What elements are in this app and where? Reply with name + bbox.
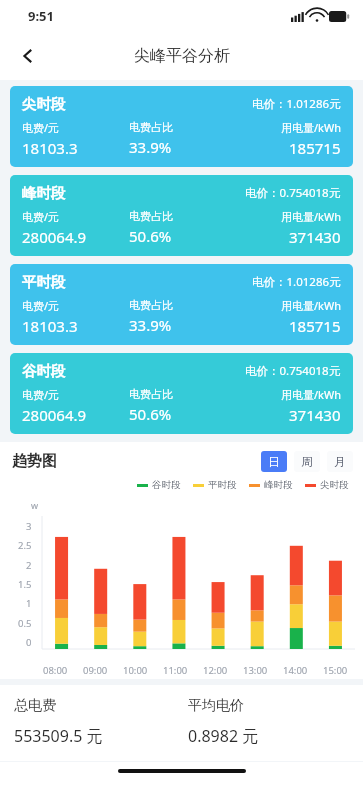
staticText: 2 xyxy=(26,559,32,572)
staticText: 185715 xyxy=(289,138,341,158)
staticText: 平时段 xyxy=(22,273,66,291)
staticText: 371430 xyxy=(289,227,341,247)
staticText: 33.9% xyxy=(129,137,172,157)
staticText: 月 xyxy=(334,455,346,469)
staticText: 371430 xyxy=(289,405,341,425)
staticText: 0.8982 元 xyxy=(188,725,259,747)
staticText: 日 xyxy=(268,455,280,469)
staticText: 50.6% xyxy=(129,404,172,424)
staticText: 553509.5 元 xyxy=(14,725,103,747)
staticText: 18103.3 xyxy=(22,138,78,158)
staticText: 总电费 xyxy=(14,697,56,715)
staticText: 13:00 xyxy=(243,664,268,677)
staticText: 电费/元 xyxy=(22,298,60,313)
staticText: 峰时段 xyxy=(22,184,66,202)
staticText: 用电量/kWh xyxy=(281,120,341,135)
button[interactable]: 尖时段 xyxy=(10,86,353,167)
button[interactable]: Back xyxy=(6,34,50,78)
staticText: 15:00 xyxy=(323,664,348,677)
staticText: 尖时段 xyxy=(320,479,349,491)
staticText: 平时段 xyxy=(208,479,237,491)
staticText: 趋势图 xyxy=(12,452,57,471)
staticText: 电费占比 xyxy=(129,298,173,312)
staticText: 电价：0.754018元 xyxy=(245,363,341,379)
staticText: 11:00 xyxy=(163,664,188,677)
staticText: 1 xyxy=(26,597,32,610)
staticText: 电费/元 xyxy=(22,120,60,135)
staticText: 10:00 xyxy=(123,664,148,677)
staticText: 用电量/kWh xyxy=(281,298,341,313)
staticText: 14:00 xyxy=(283,664,308,677)
staticText: 08:00 xyxy=(43,664,68,677)
button[interactable]: 谷时段 xyxy=(10,353,353,434)
staticText: 电费/元 xyxy=(22,387,60,402)
staticText: 尖时段 xyxy=(22,95,66,113)
staticText: 电价：0.754018元 xyxy=(245,185,341,201)
staticText: 9:51 xyxy=(28,7,54,25)
staticText: 18103.3 xyxy=(22,316,78,336)
staticText: 电价：1.01286元 xyxy=(252,96,341,112)
staticText: 2.5 xyxy=(18,539,32,552)
staticText: 280064.9 xyxy=(22,227,87,247)
staticText: 谷时段 xyxy=(152,479,181,491)
button[interactable]: 峰时段 xyxy=(10,175,353,256)
staticText: 周 xyxy=(301,455,313,469)
button[interactable]: 日 xyxy=(261,451,287,472)
button[interactable]: 平时段 xyxy=(10,264,353,345)
staticText: 0.5 xyxy=(18,617,32,630)
staticText: 3 xyxy=(26,520,32,533)
staticText: 电费占比 xyxy=(129,209,173,223)
staticText: 电费占比 xyxy=(129,387,173,401)
staticText: 50.6% xyxy=(129,226,172,246)
staticText: 电费占比 xyxy=(129,120,173,134)
staticText: w xyxy=(31,499,39,511)
staticText: 谷时段 xyxy=(22,362,66,380)
staticText: 185715 xyxy=(289,316,341,336)
staticText: 280064.9 xyxy=(22,405,87,425)
staticText: 09:00 xyxy=(83,664,108,677)
button[interactable]: 周 xyxy=(294,451,320,472)
staticText: 峰时段 xyxy=(264,479,293,491)
staticText: 电价：1.01286元 xyxy=(252,274,341,290)
staticText: 33.9% xyxy=(129,315,172,335)
staticText: 用电量/kWh xyxy=(281,209,341,224)
staticText: 尖峰平谷分析 xyxy=(134,46,230,66)
staticText: 1.5 xyxy=(18,578,32,591)
staticText: 电费/元 xyxy=(22,209,60,224)
staticText: 平均电价 xyxy=(188,697,244,715)
staticText: 用电量/kWh xyxy=(281,387,341,402)
staticText: 12:00 xyxy=(203,664,228,677)
button[interactable]: 月 xyxy=(327,451,353,472)
staticText: 0 xyxy=(26,636,32,649)
